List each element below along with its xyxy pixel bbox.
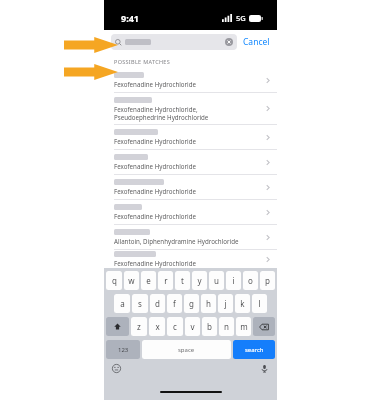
staticText: p (265, 275, 270, 286)
button[interactable]: Clear search (111, 34, 237, 50)
staticText: n (224, 321, 229, 332)
staticText: 9:41 (121, 12, 139, 24)
button[interactable]: d (150, 294, 165, 313)
staticText: h (206, 298, 211, 309)
staticText: Fexofenadine Hydrochloride (114, 80, 197, 88)
button[interactable]: k (235, 294, 250, 313)
staticText: Cancel (243, 36, 270, 48)
button[interactable]: l (252, 294, 267, 313)
button[interactable]: c (167, 317, 183, 336)
button[interactable]: w (124, 271, 139, 290)
staticText: s (138, 298, 142, 309)
staticText: x (155, 321, 160, 332)
staticText: l (258, 298, 261, 309)
button[interactable]: search (233, 340, 275, 359)
staticText: Fexofenadine Hydrochloride (114, 187, 197, 195)
button[interactable]: p (260, 271, 275, 290)
button[interactable]: i (226, 271, 241, 290)
button[interactable]: Fexofenadine Hydrochloride (104, 150, 277, 174)
staticText: Fexofenadine Hydrochloride (114, 259, 197, 267)
staticText: Fexofenadine Hydrochloride (114, 212, 197, 220)
staticText: a (120, 298, 125, 309)
staticText: POSSIBLE MATCHES (114, 58, 170, 65)
staticText: b (207, 321, 212, 332)
button[interactable]: Backspace (253, 317, 275, 336)
button[interactable]: Shift (106, 317, 129, 336)
staticText: d (155, 298, 160, 309)
button[interactable]: a (114, 294, 130, 313)
staticText: g (189, 298, 194, 309)
staticText: Allantoin, Diphenhydramine Hydrochloride (114, 237, 239, 245)
button[interactable]: g (184, 294, 199, 313)
staticText: c (173, 321, 177, 332)
button[interactable]: u (209, 271, 224, 290)
staticText: 5G (236, 13, 246, 23)
staticText: space (178, 346, 195, 354)
button[interactable]: m (236, 317, 251, 336)
button[interactable]: e (141, 271, 156, 290)
staticText: f (173, 298, 176, 309)
button[interactable]: Fexofenadine Hydrochloride (104, 200, 277, 224)
button[interactable]: 123 (106, 340, 140, 359)
staticText: Fexofenadine Hydrochloride, (114, 105, 198, 113)
button[interactable]: z (131, 317, 147, 336)
staticText: o (248, 275, 253, 286)
button[interactable]: Emoji (111, 363, 121, 373)
button[interactable]: t (175, 271, 190, 290)
button[interactable]: v (185, 317, 200, 336)
button[interactable]: q (106, 271, 122, 290)
button[interactable]: j (218, 294, 233, 313)
staticText: u (214, 275, 219, 286)
staticText: j (224, 298, 227, 309)
staticText: t (181, 275, 184, 286)
staticText: w (128, 275, 135, 286)
button[interactable]: Fexofenadine Hydrochloride (104, 175, 277, 199)
staticText: r (164, 275, 168, 286)
button[interactable]: y (192, 271, 207, 290)
staticText: z (137, 321, 141, 332)
staticText: 123 (118, 346, 129, 354)
staticText: e (146, 275, 151, 286)
staticText: Fexofenadine Hydrochloride (114, 162, 197, 170)
staticText: k (240, 298, 245, 309)
button[interactable]: Dictation (259, 363, 269, 373)
button[interactable]: Fexofenadine Hydrochloride (104, 250, 277, 268)
staticText: q (112, 275, 117, 286)
button[interactable]: x (149, 317, 165, 336)
button[interactable]: Cancel (242, 34, 271, 50)
button[interactable]: b (202, 317, 217, 336)
staticText: m (240, 321, 248, 332)
staticText: Pseudoephedrine Hydrochloride (114, 113, 209, 121)
staticText: y (197, 275, 202, 286)
staticText: search (245, 346, 264, 354)
staticText: Fexofenadine Hydrochloride (114, 137, 197, 145)
button[interactable]: Fexofenadine Hydrochloride (104, 125, 277, 149)
button[interactable]: Allantoin, Diphenhydramine Hydrochloride (104, 225, 277, 249)
button[interactable]: f (167, 294, 182, 313)
button[interactable]: n (219, 317, 234, 336)
button[interactable]: o (243, 271, 258, 290)
staticText: i (232, 275, 235, 286)
button[interactable]: Fexofenadine Hydrochloride, (104, 93, 277, 124)
button[interactable]: Clear search (225, 38, 233, 46)
staticText: v (190, 321, 195, 332)
button[interactable]: h (201, 294, 216, 313)
button[interactable]: r (158, 271, 173, 290)
button[interactable]: s (132, 294, 148, 313)
button[interactable]: space (142, 340, 231, 359)
button[interactable]: Fexofenadine Hydrochloride (104, 68, 277, 92)
